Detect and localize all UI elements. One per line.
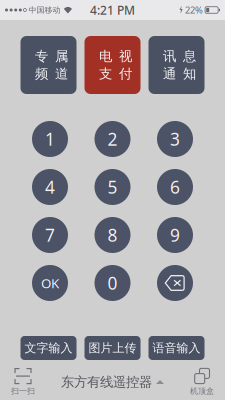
- staticText: 东方有线遥控器: [61, 374, 152, 390]
- staticText: 22%: [183, 4, 205, 16]
- staticText: 8: [107, 223, 117, 246]
- staticText: 4:21 PM: [90, 2, 135, 18]
- button[interactable]: 1: [32, 121, 68, 157]
- staticText: 文字输入: [24, 341, 72, 355]
- staticText: 扫一扫: [11, 386, 35, 396]
- button[interactable]: 电视: [84, 36, 140, 94]
- staticText: 中国移动: [26, 5, 60, 15]
- button[interactable]: 机顶盒: [179, 366, 225, 398]
- button[interactable]: 0: [94, 265, 130, 301]
- staticText: 0: [107, 271, 117, 294]
- staticText: 6: [170, 175, 180, 198]
- staticText: 9: [170, 223, 180, 246]
- staticText: 语音输入: [152, 341, 200, 355]
- button[interactable]: 7: [32, 217, 68, 253]
- staticText: 专属: [35, 48, 68, 64]
- button[interactable]: 图片上传: [84, 336, 140, 360]
- button[interactable]: 9: [157, 217, 193, 253]
- staticText: 支付: [99, 65, 132, 82]
- button[interactable]: 文字输入: [20, 336, 76, 360]
- button[interactable]: 6: [157, 169, 193, 205]
- staticText: 7: [45, 223, 55, 246]
- button[interactable]: 5: [94, 169, 130, 205]
- button[interactable]: 专属: [20, 36, 76, 94]
- button[interactable]: 4: [32, 169, 68, 205]
- staticText: 2: [107, 127, 117, 150]
- button[interactable]: OK: [32, 265, 68, 301]
- staticText: 通知: [163, 65, 196, 82]
- staticText: 电视: [99, 48, 132, 64]
- button[interactable]: 2: [94, 121, 130, 157]
- staticText: 频道: [35, 65, 68, 82]
- staticText: 3: [170, 127, 180, 150]
- button[interactable]: 扫一扫: [0, 366, 46, 398]
- staticText: 4: [45, 175, 55, 198]
- staticText: 机顶盒: [190, 386, 214, 396]
- button[interactable]: 3: [157, 121, 193, 157]
- staticText: 讯息: [163, 48, 196, 64]
- button[interactable]: 8: [94, 217, 130, 253]
- staticText: 5: [107, 175, 117, 198]
- button[interactable]: 东方有线遥控器: [55, 369, 170, 395]
- staticText: OK: [41, 274, 59, 292]
- button[interactable]: 语音输入: [148, 336, 204, 360]
- staticText: 1: [45, 127, 55, 150]
- button[interactable]: Delete: [157, 265, 193, 301]
- staticText: 图片上传: [88, 341, 136, 355]
- button[interactable]: 讯息: [148, 36, 204, 94]
